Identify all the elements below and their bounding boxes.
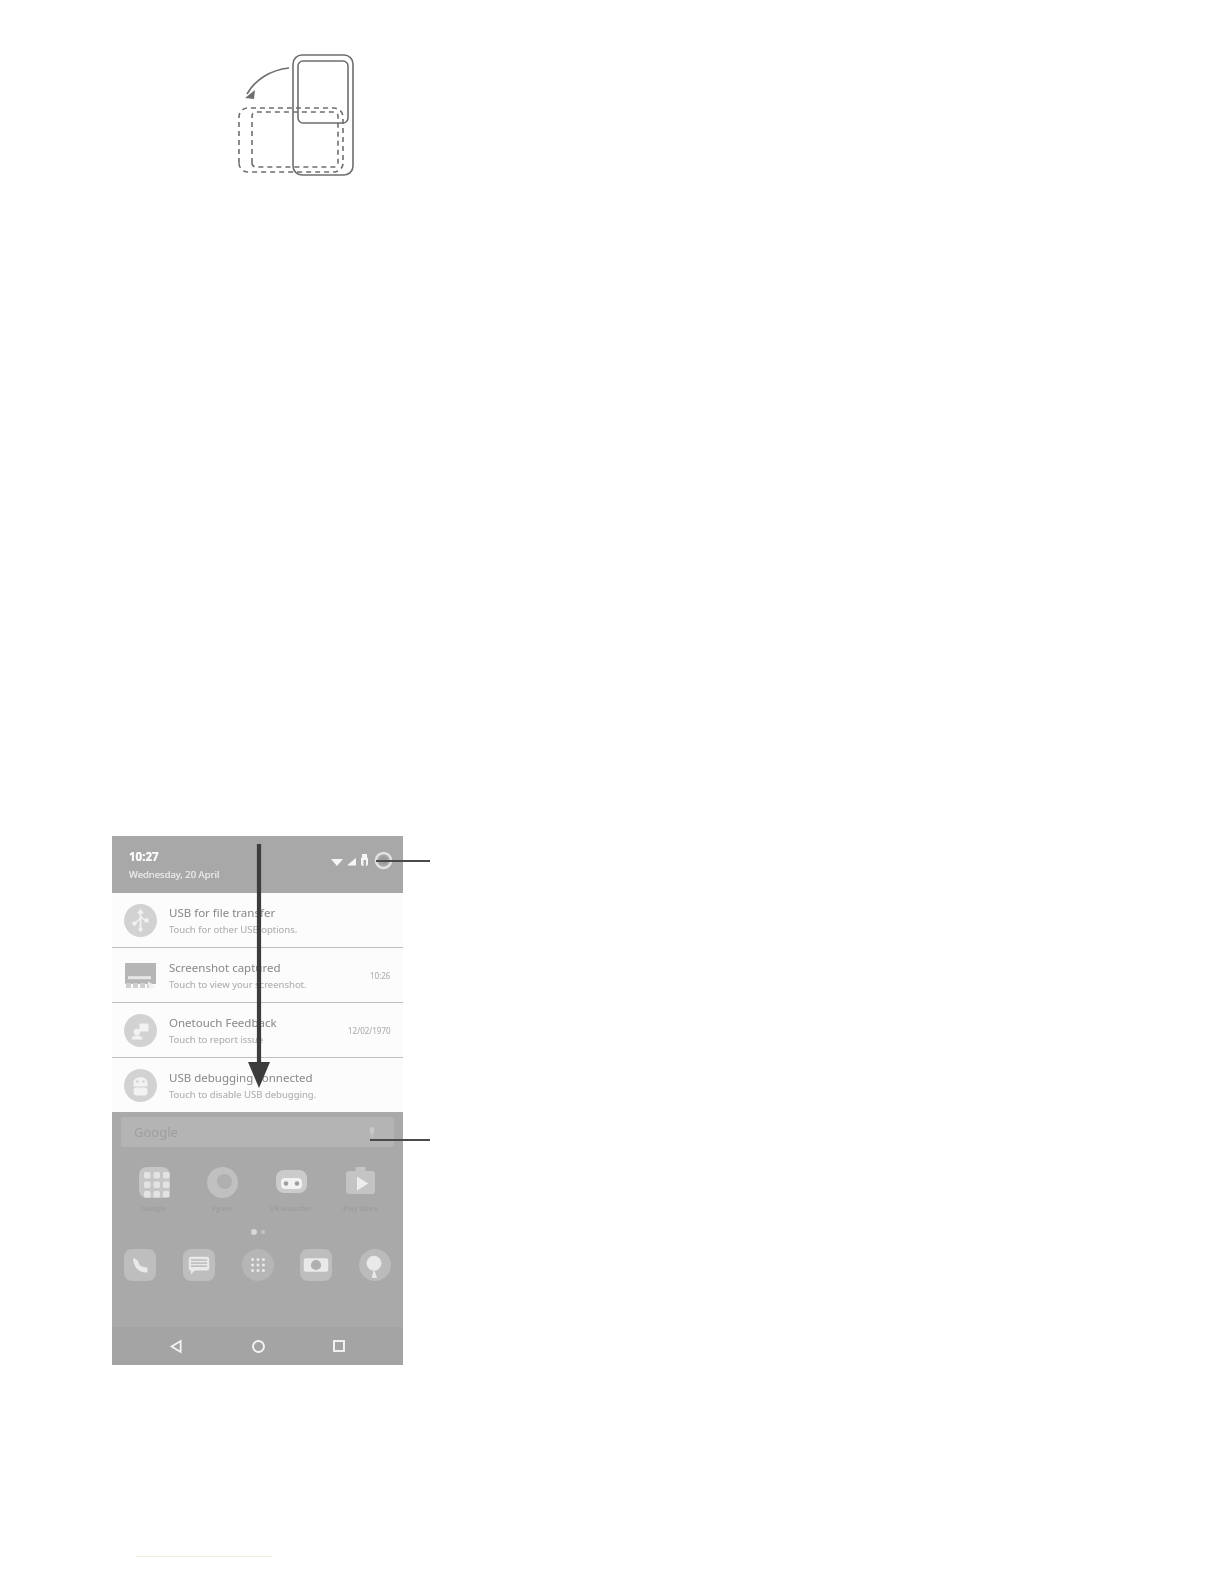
- button[interactable]: Phone: [120, 1245, 160, 1285]
- button[interactable]: Messages: [179, 1245, 219, 1285]
- button[interactable]: Play Store: [326, 1165, 395, 1213]
- button[interactable]: Chrome: [355, 1245, 395, 1285]
- button[interactable]: Recents: [322, 1329, 356, 1363]
- staticText: Play Store: [343, 1203, 378, 1213]
- staticText: 10:27: [129, 849, 159, 865]
- staticText: Screenshot captured: [169, 960, 281, 976]
- button[interactable]: Google: [121, 1117, 394, 1147]
- staticText: Touch to report issue: [169, 1033, 264, 1046]
- button[interactable]: Back: [159, 1329, 193, 1363]
- other: Settings: [375, 852, 392, 869]
- staticText: 12/02/1970: [348, 1025, 391, 1036]
- button[interactable]: USB debugging connected: [112, 1058, 403, 1112]
- staticText: Wednesday, 20 April: [129, 868, 220, 881]
- other: Voice search: [366, 1126, 378, 1138]
- button[interactable]: USB for file transfer: [112, 893, 403, 947]
- staticText: Google: [134, 1123, 178, 1141]
- staticText: USB for file transfer: [169, 905, 276, 921]
- button[interactable]: Home: [241, 1329, 275, 1363]
- staticText: Google: [141, 1203, 167, 1213]
- staticText: Touch to view your screenshot.: [169, 978, 307, 991]
- staticText: Touch for other USB options.: [169, 923, 298, 936]
- button[interactable]: Fyuse: [188, 1165, 257, 1213]
- button[interactable]: Google: [120, 1165, 188, 1213]
- button[interactable]: All apps: [238, 1245, 278, 1285]
- button[interactable]: VR launcher: [257, 1165, 326, 1213]
- staticText: VR launcher: [270, 1203, 313, 1213]
- staticText: Fyuse: [212, 1203, 233, 1213]
- button[interactable]: Screenshot captured: [112, 948, 403, 1002]
- button[interactable]: Camera: [296, 1245, 336, 1285]
- button[interactable]: Onetouch Feedback: [112, 1003, 403, 1057]
- staticText: Touch to disable USB debugging.: [169, 1088, 317, 1101]
- staticText: USB debugging connected: [169, 1070, 313, 1086]
- staticText: Onetouch Feedback: [169, 1015, 277, 1031]
- staticText: 10:26: [370, 970, 391, 981]
